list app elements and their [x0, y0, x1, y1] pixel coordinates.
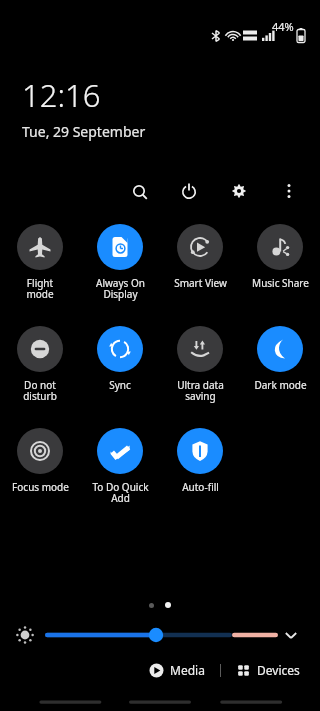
button[interactable]: Flight mode	[3, 222, 77, 303]
staticText: Sync	[109, 378, 131, 392]
button[interactable]: More options	[274, 176, 304, 206]
staticText: Ultra data saving	[177, 378, 224, 403]
staticText: Flight mode	[26, 276, 54, 301]
button[interactable]: Devices	[230, 659, 306, 681]
button[interactable]: Auto-fill	[163, 426, 237, 496]
staticText: To Do Quick Add	[92, 480, 149, 505]
staticText: 44%	[272, 19, 294, 34]
staticText: Focus mode	[12, 480, 69, 494]
button[interactable]: Search	[124, 176, 154, 206]
button[interactable]: To Do Quick Add	[83, 426, 157, 507]
button[interactable]: Settings	[224, 176, 254, 206]
button[interactable]: Do not disturb	[3, 324, 77, 405]
button[interactable]: Ultra data saving	[163, 324, 237, 405]
button[interactable]: Media	[143, 659, 211, 681]
button[interactable]: Expand brightness settings	[278, 622, 304, 648]
button[interactable]: Focus mode	[3, 426, 77, 496]
staticText: Do not disturb	[23, 378, 57, 403]
staticText: Always On Display	[96, 276, 145, 301]
button[interactable]: Power	[174, 176, 204, 206]
staticText: Tue, 29 September	[22, 122, 146, 141]
staticText: Music Share	[252, 276, 309, 290]
button[interactable]: Smart View	[163, 222, 237, 292]
button[interactable]	[0, 620, 320, 650]
button[interactable]: Always On Display	[83, 222, 157, 303]
button[interactable]: Dark mode	[243, 324, 317, 394]
staticText: Dark mode	[254, 378, 307, 392]
staticText: Media	[170, 662, 205, 678]
staticText: Smart View	[174, 276, 227, 290]
button[interactable]: Music Share	[243, 222, 317, 292]
staticText: Auto-fill	[182, 480, 219, 494]
staticText: 12:16	[22, 74, 101, 116]
staticText: Devices	[257, 662, 300, 678]
button[interactable]: Sync	[83, 324, 157, 394]
